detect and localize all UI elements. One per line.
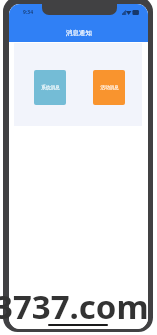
- staticText: 消息通知: [66, 29, 92, 37]
- other: Status icons: [122, 10, 140, 15]
- button[interactable]: 活动消息: [93, 70, 125, 105]
- staticText: 3737.com: [0, 284, 149, 329]
- staticText: 9:34: [23, 9, 33, 16]
- staticText: 系统消息: [41, 85, 60, 91]
- staticText: 活动消息: [100, 85, 119, 91]
- button[interactable]: 系统消息: [34, 70, 66, 105]
